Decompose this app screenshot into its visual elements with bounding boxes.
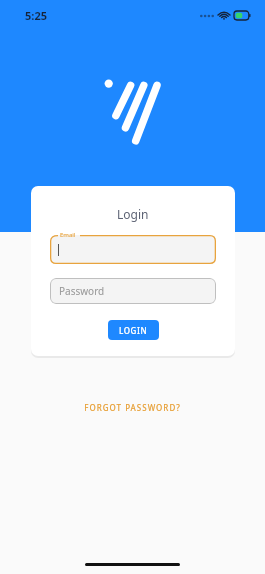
- staticText: Login: [117, 206, 149, 222]
- staticText: Password: [59, 284, 105, 298]
- button[interactable]: Password: [50, 278, 216, 304]
- button[interactable]: FORGOT PASSWORD?: [74, 398, 191, 417]
- button[interactable]: Email: [50, 235, 216, 264]
- staticText: Email: [60, 231, 76, 239]
- button[interactable]: LOGIN: [108, 320, 159, 340]
- staticText: 5:25: [25, 8, 47, 23]
- staticText: FORGOT PASSWORD?: [84, 402, 181, 413]
- staticText: LOGIN: [119, 325, 148, 336]
